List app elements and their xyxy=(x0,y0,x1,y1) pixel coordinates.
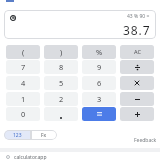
button[interactable] xyxy=(82,107,116,121)
button[interactable]: 2 xyxy=(44,92,78,106)
staticText: 2 xyxy=(59,94,64,104)
button[interactable]: 123 xyxy=(4,130,31,140)
staticText: 5 xyxy=(59,78,64,88)
staticText: 43 % 90 = xyxy=(127,13,150,20)
staticText: ( xyxy=(22,47,25,57)
button[interactable] xyxy=(120,76,154,90)
button[interactable]: Fx xyxy=(31,130,57,140)
staticText: AC xyxy=(134,48,141,56)
staticText: 7 xyxy=(21,62,26,72)
staticText: 38.7 xyxy=(123,22,151,38)
button[interactable] xyxy=(44,107,78,121)
button[interactable]: AC xyxy=(120,45,154,59)
staticText: calculator.app xyxy=(14,154,47,160)
staticText: 9 xyxy=(97,62,102,72)
staticText: ) xyxy=(60,47,63,57)
button[interactable]: ) xyxy=(44,45,78,59)
button[interactable]: 9 xyxy=(82,60,116,74)
staticText: 123 xyxy=(13,132,22,139)
button[interactable]: ( xyxy=(6,45,40,59)
button[interactable]: Feedback xyxy=(133,136,158,145)
staticText: 1 xyxy=(21,94,26,104)
staticText: 8 xyxy=(59,62,64,72)
button[interactable]: 8 xyxy=(44,60,78,74)
button[interactable]: 5 xyxy=(44,76,78,90)
button[interactable]: 0 xyxy=(6,107,40,121)
button[interactable]: 6 xyxy=(82,76,116,90)
button[interactable] xyxy=(120,92,154,106)
staticText: Fx xyxy=(41,132,47,139)
button[interactable]: 3 xyxy=(82,92,116,106)
staticText: 3 xyxy=(97,94,102,104)
button[interactable]: 1 xyxy=(6,92,40,106)
staticText: Feedback xyxy=(134,137,157,144)
button[interactable]: 7 xyxy=(6,60,40,74)
staticText: % xyxy=(96,47,103,57)
button[interactable]: 4 xyxy=(6,76,40,90)
button[interactable]: % xyxy=(82,45,116,59)
button[interactable] xyxy=(120,107,154,121)
button[interactable] xyxy=(120,60,154,74)
staticText: 6 xyxy=(97,78,102,88)
button[interactable]: History xyxy=(7,12,18,23)
staticText: 0 xyxy=(21,109,26,119)
staticText: 4 xyxy=(21,78,26,88)
